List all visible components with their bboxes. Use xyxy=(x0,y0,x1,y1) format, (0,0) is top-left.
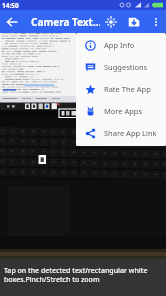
button[interactable]: More options xyxy=(145,11,166,32)
staticText: App Info xyxy=(104,40,135,50)
staticText: Camera Text... xyxy=(31,15,100,29)
button[interactable]: Back xyxy=(0,10,24,33)
staticText: More Apps xyxy=(104,106,143,116)
button[interactable]: Suggestions xyxy=(76,56,166,78)
staticText: Suggestions xyxy=(104,62,148,72)
button[interactable]: Flash xyxy=(100,11,122,33)
button[interactable]: App Info xyxy=(76,34,166,56)
staticText: Share App Link xyxy=(104,128,157,138)
staticText: Tap on the detected text/rectangular whi… xyxy=(4,266,162,284)
button[interactable]: More Apps xyxy=(76,100,166,122)
button[interactable]: Share App Link xyxy=(76,122,166,144)
button[interactable]: Rate The App xyxy=(76,78,166,100)
staticText: 14:50 xyxy=(2,1,19,10)
staticText: Rate The App xyxy=(104,84,151,94)
button[interactable]: Save xyxy=(123,11,145,33)
